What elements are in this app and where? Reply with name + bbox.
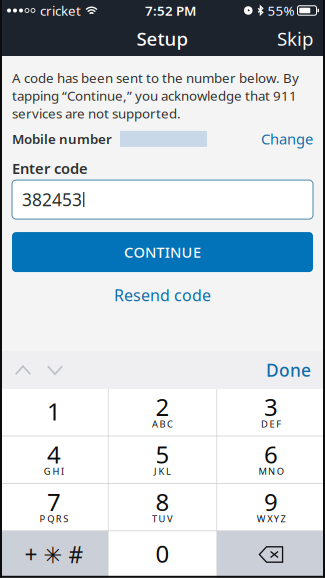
staticText: 8 — [155, 486, 169, 518]
staticText: 1 — [47, 395, 61, 427]
button[interactable]: Change — [261, 129, 313, 149]
staticText: Enter code — [12, 159, 88, 178]
button[interactable]: 8 — [109, 484, 216, 530]
button[interactable]: 4 — [0, 436, 108, 483]
staticText: 4 — [47, 438, 61, 470]
button[interactable]: Next field — [39, 351, 71, 388]
staticText: MNO — [258, 465, 284, 477]
button[interactable]: 6 — [217, 436, 325, 483]
button[interactable]: Previous field — [7, 351, 39, 388]
staticText: 5 — [155, 438, 169, 470]
staticText: Setup — [136, 26, 188, 51]
button[interactable]: CONTINUE — [12, 232, 313, 272]
staticText: 9 — [264, 486, 278, 518]
button[interactable]: 9 — [217, 484, 325, 530]
button[interactable]: Done — [253, 352, 324, 388]
staticText: DEF — [261, 418, 281, 430]
button[interactable]: Resend code — [12, 280, 313, 310]
staticText: Resend code — [114, 284, 211, 306]
staticText: 55% — [267, 2, 294, 19]
staticText: Change — [261, 129, 313, 149]
staticText: GHI — [44, 465, 64, 477]
staticText: CONTINUE — [124, 242, 201, 262]
staticText: 3 — [264, 391, 278, 423]
button[interactable]: 3 — [217, 389, 325, 436]
staticText: WXYZ — [257, 512, 285, 525]
button[interactable]: Delete — [217, 531, 325, 578]
button[interactable]: 7 — [0, 484, 108, 530]
staticText: 2 — [155, 391, 169, 423]
staticText: 0 — [155, 538, 169, 569]
button[interactable]: 5 — [109, 436, 216, 483]
staticText: Skip — [277, 26, 313, 51]
staticText: + ✳ # — [24, 539, 83, 569]
button[interactable]: 2 — [109, 389, 216, 436]
button[interactable]: 0 — [109, 531, 216, 578]
button[interactable]: 1 — [0, 389, 108, 436]
staticText: 382453 — [22, 188, 82, 211]
staticText: PQRS — [39, 512, 68, 525]
staticText: 7:52 PM — [145, 2, 196, 19]
staticText: TUV — [152, 512, 173, 525]
staticText: 7 — [47, 486, 61, 518]
staticText: A code has been sent to the number below… — [12, 69, 299, 122]
staticText: ABC — [152, 418, 173, 430]
staticText: Mobile number — [12, 130, 112, 148]
staticText: cricket — [40, 2, 81, 19]
staticText: Done — [266, 358, 311, 381]
staticText: 6 — [264, 438, 278, 470]
button[interactable]: Symbols — [0, 531, 108, 578]
button[interactable]: Skip — [265, 21, 325, 55]
staticText: JKL — [154, 465, 171, 477]
